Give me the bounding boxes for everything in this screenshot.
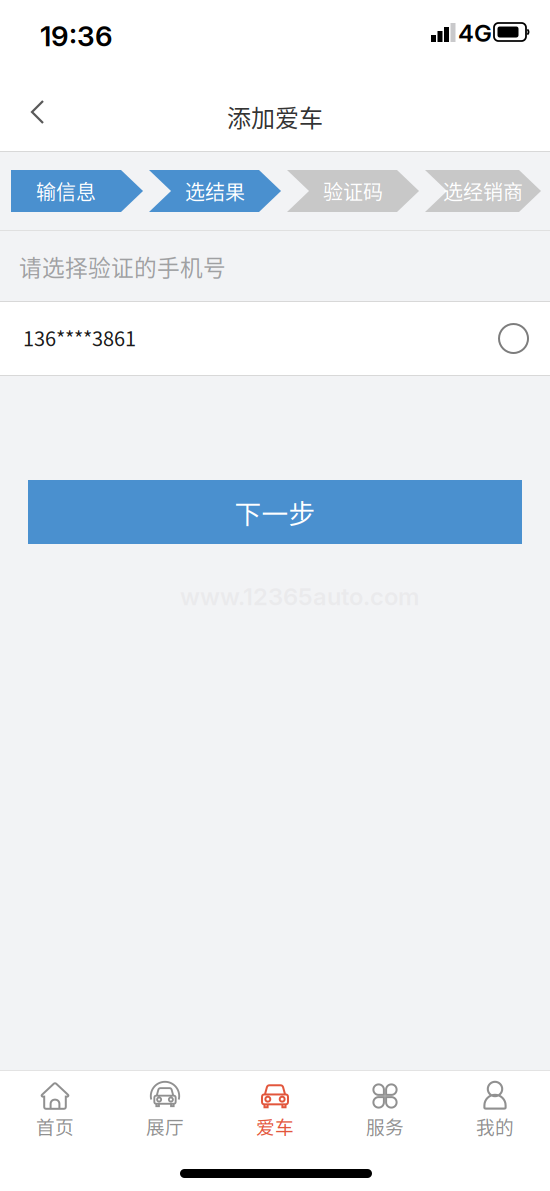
button[interactable]: 下一步	[28, 480, 522, 544]
button[interactable]: 我的	[440, 1071, 550, 1155]
staticText: 我的	[476, 1112, 514, 1139]
staticText: 爱车	[256, 1112, 294, 1139]
button[interactable]: 136****3861	[0, 302, 550, 375]
button[interactable]: 验证码	[302, 170, 404, 212]
staticText: 展厅	[146, 1112, 184, 1139]
staticText: 添加爱车	[227, 99, 323, 134]
staticText: 服务	[366, 1112, 404, 1139]
button[interactable]: 服务	[330, 1071, 440, 1155]
staticText: 136****3861	[23, 323, 136, 352]
button[interactable]: Back	[10, 84, 66, 140]
staticText: 选结果	[185, 176, 245, 205]
staticText: 4G	[458, 18, 492, 47]
staticText: 选经销商	[443, 176, 523, 205]
button[interactable]: 爱车	[220, 1071, 330, 1155]
staticText: 输信息	[36, 176, 96, 205]
button[interactable]: 展厅	[110, 1071, 220, 1155]
staticText: 首页	[36, 1112, 74, 1139]
button[interactable]: 选结果	[164, 170, 266, 212]
button[interactable]: 输信息	[4, 170, 128, 212]
staticText: 下一步	[234, 493, 315, 531]
staticText: www.12365auto.com	[180, 582, 419, 611]
staticText: 请选择验证的手机号	[19, 250, 226, 283]
staticText: 19:36	[40, 19, 113, 53]
button[interactable]: 首页	[0, 1071, 110, 1155]
staticText: 验证码	[323, 176, 383, 205]
button[interactable]: 选经销商	[440, 170, 526, 212]
